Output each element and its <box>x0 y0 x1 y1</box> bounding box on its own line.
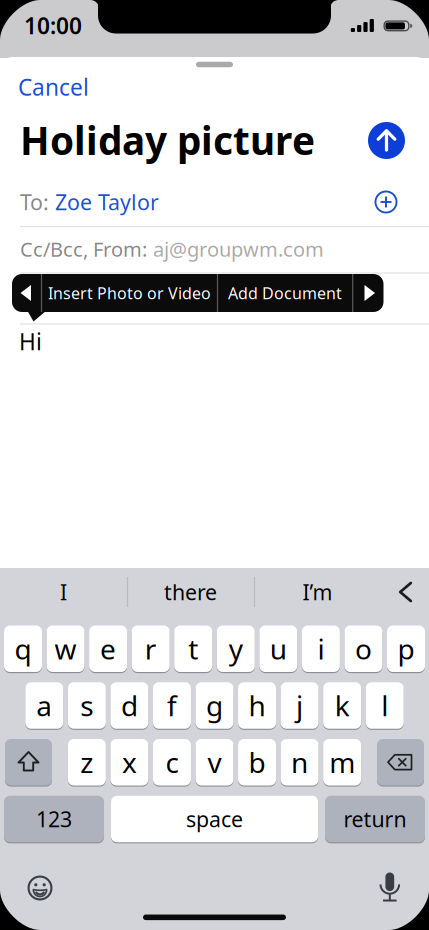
staticText: r <box>145 630 157 667</box>
button[interactable]: s <box>68 681 106 730</box>
button[interactable]: t <box>174 624 212 673</box>
button[interactable]: m <box>323 738 361 786</box>
button[interactable]: l <box>366 681 404 730</box>
staticText: Add Document <box>228 282 342 304</box>
button[interactable]: there <box>130 569 250 615</box>
staticText: z <box>80 744 93 781</box>
staticText: f <box>167 687 177 724</box>
staticText: Cancel <box>18 72 89 102</box>
button[interactable]: g <box>195 681 233 730</box>
staticText: y <box>229 630 243 667</box>
staticText: p <box>397 630 414 667</box>
staticText: s <box>80 687 93 724</box>
button[interactable]: return <box>325 795 425 843</box>
button[interactable]: u <box>259 624 297 673</box>
staticText: x <box>122 744 137 781</box>
button[interactable]: More menu items <box>353 274 383 312</box>
staticText: h <box>249 687 266 724</box>
button[interactable]: I <box>3 569 123 615</box>
staticText: Hi <box>19 326 42 356</box>
staticText: e <box>100 630 116 667</box>
button[interactable]: j <box>281 681 319 730</box>
button[interactable]: Hide predictions <box>395 581 415 602</box>
button[interactable]: Emoji <box>27 875 52 900</box>
staticText: k <box>335 687 350 724</box>
button[interactable]: To: <box>20 188 159 216</box>
button[interactable]: o <box>344 624 382 673</box>
staticText: b <box>249 744 266 781</box>
staticText: v <box>207 744 221 781</box>
staticText: n <box>291 744 308 781</box>
staticText: To: <box>20 188 49 216</box>
staticText: c <box>165 744 178 781</box>
button[interactable]: h <box>238 681 276 730</box>
staticText: a <box>36 687 52 724</box>
staticText: o <box>355 630 372 667</box>
staticText: w <box>55 630 77 667</box>
button[interactable]: Previous menu items <box>12 274 41 312</box>
staticText: I <box>60 578 67 606</box>
button[interactable]: w <box>47 624 85 673</box>
staticText: return <box>343 805 406 833</box>
staticText: t <box>188 630 198 667</box>
button[interactable]: 123 <box>4 795 104 843</box>
button[interactable]: i <box>302 624 340 673</box>
staticText: aj@groupwm.com <box>153 236 324 262</box>
button[interactable]: Add Document <box>218 274 351 312</box>
staticText: m <box>329 744 355 781</box>
staticText: l <box>381 687 388 724</box>
button[interactable]: b <box>238 738 276 786</box>
button[interactable]: q <box>4 624 42 673</box>
button[interactable]: y <box>217 624 255 673</box>
button[interactable]: c <box>153 738 191 786</box>
button[interactable]: space <box>111 795 318 843</box>
staticText: space <box>186 805 243 833</box>
staticText: Cc/Bcc, From: <box>20 236 147 262</box>
button[interactable]: a <box>25 681 63 730</box>
staticText: i <box>317 630 324 667</box>
staticText: there <box>164 578 217 606</box>
button[interactable]: e <box>89 624 127 673</box>
button[interactable]: Shift <box>5 738 52 786</box>
button[interactable]: Add contact <box>374 190 397 213</box>
button[interactable]: r <box>132 624 170 673</box>
button[interactable]: Cancel <box>18 72 89 102</box>
staticText: g <box>206 687 223 724</box>
staticText: 10:00 <box>24 10 82 40</box>
staticText: Insert Photo or Video <box>48 282 211 304</box>
staticText: q <box>14 630 31 667</box>
button[interactable]: p <box>387 624 425 673</box>
button[interactable]: k <box>323 681 361 730</box>
staticText: Zoe Taylor <box>55 188 159 216</box>
button[interactable]: Dictation <box>379 872 401 902</box>
button[interactable]: I’m <box>257 569 377 615</box>
button[interactable]: Cc/Bcc, From: <box>20 236 324 262</box>
staticText: 123 <box>36 805 72 833</box>
button[interactable]: x <box>110 738 148 786</box>
staticText: d <box>121 687 138 724</box>
button[interactable]: d <box>110 681 148 730</box>
button[interactable]: f <box>153 681 191 730</box>
button[interactable]: v <box>195 738 233 786</box>
staticText: I’m <box>302 578 332 606</box>
button[interactable]: n <box>281 738 319 786</box>
button[interactable]: z <box>68 738 106 786</box>
staticText: Holiday picture <box>20 114 315 166</box>
button[interactable]: Send <box>368 122 405 159</box>
button[interactable]: Insert Photo or Video <box>42 274 216 312</box>
button[interactable]: Delete <box>377 738 424 786</box>
staticText: j <box>296 687 303 724</box>
staticText: u <box>270 630 287 667</box>
